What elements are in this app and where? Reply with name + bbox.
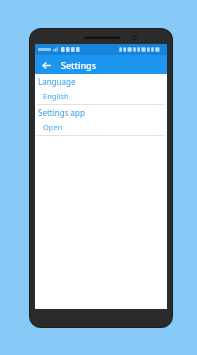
staticText: English: [43, 91, 69, 101]
staticText: Open: [43, 122, 63, 132]
button[interactable]: Settings app: [35, 105, 167, 119]
button[interactable]: Language: [35, 74, 167, 88]
staticText: Settings app: [38, 107, 85, 118]
button[interactable]: Back: [38, 57, 54, 73]
staticText: Language: [38, 76, 76, 87]
staticText: Settings: [61, 59, 97, 71]
button[interactable]: English: [35, 88, 167, 104]
button[interactable]: Open: [35, 119, 167, 135]
